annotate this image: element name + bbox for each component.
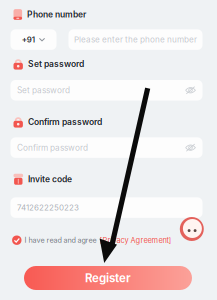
staticText: Invite code: [28, 174, 72, 184]
button[interactable]: Confirm password: [10, 137, 202, 158]
staticText: I have read and agree: [24, 236, 96, 245]
staticText: 7412622250223: [17, 203, 79, 212]
staticText: Confirm password: [17, 143, 88, 153]
button[interactable]: 7412622250223: [10, 197, 202, 218]
button[interactable]: +91: [10, 29, 56, 50]
button[interactable]: Customer support: [180, 217, 204, 241]
button[interactable]: Register: [24, 266, 192, 290]
staticText: Set password: [28, 59, 84, 69]
button[interactable]: Set password: [10, 80, 202, 100]
staticText: Register: [85, 271, 131, 285]
button[interactable]: Please enter the phone number: [68, 29, 202, 50]
staticText: +91: [22, 35, 35, 44]
staticText: Confirm password: [28, 117, 102, 127]
button[interactable]: I have read and agree: [12, 235, 217, 245]
staticText: Please enter the phone number: [74, 35, 197, 44]
staticText: Phone number: [27, 9, 86, 20]
staticText: [Privacy Agreement]: [99, 236, 171, 245]
staticText: Set password: [17, 85, 70, 95]
